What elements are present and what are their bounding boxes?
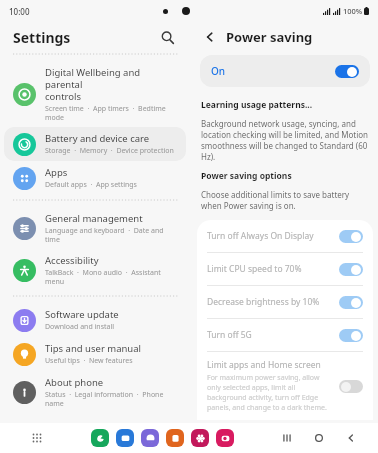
staticText: About phone [45, 376, 104, 389]
button[interactable]: Home [310, 429, 328, 447]
staticText: Settings [13, 28, 71, 47]
button[interactable]: Turn off Always On Display [197, 220, 373, 252]
staticText: Accessibility [45, 254, 99, 267]
button[interactable]: Back [200, 27, 220, 47]
button[interactable]: camera [216, 429, 234, 447]
button[interactable]: Recents [278, 429, 296, 447]
button[interactable]: gallery [191, 429, 209, 447]
button[interactable]: internet [141, 429, 159, 447]
staticText: Choose additional limits to save battery… [201, 189, 369, 211]
staticText: Software update [45, 308, 119, 321]
staticText: Turn off Always On Display [207, 230, 314, 242]
staticText: Limit apps and Home screen [207, 359, 321, 371]
button[interactable]: Back [342, 429, 360, 447]
button[interactable]: Limit apps and Home screen [197, 352, 373, 420]
staticText: Digital Wellbeing and parental controls [45, 66, 178, 103]
button[interactable]: Tips and user manual [4, 337, 186, 371]
staticText: Battery and device care [45, 132, 150, 145]
button[interactable]: phone [91, 429, 109, 447]
staticText: On [211, 64, 226, 78]
staticText: General management [45, 212, 143, 225]
button[interactable]: About phone [4, 371, 186, 413]
button[interactable]: General management [4, 207, 186, 249]
button[interactable]: Toggle [339, 230, 363, 243]
staticText: TalkBack · Mono audio · Assistant menu [45, 268, 178, 286]
staticText: Limit CPU speed to 70% [207, 263, 302, 275]
staticText: Status · Legal information · Phone name [45, 390, 178, 408]
button[interactable]: Apps [4, 161, 186, 195]
staticText: Apps [45, 166, 68, 179]
button[interactable]: Toggle [339, 296, 363, 309]
button[interactable]: All apps [27, 428, 47, 448]
button[interactable]: Accessibility [4, 249, 186, 291]
staticText: 10:00 [9, 6, 30, 17]
staticText: Power saving [226, 28, 313, 46]
staticText: Tips and user manual [45, 342, 142, 355]
button[interactable]: Toggle [339, 380, 363, 393]
button[interactable]: On [200, 55, 370, 87]
staticText: Turn off 5G [207, 329, 252, 341]
staticText: Power saving options [201, 170, 292, 182]
button[interactable]: Digital Wellbeing and parental controls [4, 61, 186, 127]
staticText: Screen time · App timers · Bedtime mode [45, 104, 178, 122]
button[interactable]: Toggle [339, 263, 363, 276]
button[interactable]: Toggle [339, 329, 363, 342]
staticText: Default apps · App settings [45, 180, 137, 190]
staticText: Storage · Memory · Device protection [45, 146, 174, 156]
staticText: Language and keyboard · Date and time [45, 226, 178, 244]
button[interactable]: Software update [4, 303, 186, 337]
button[interactable]: Limit CPU speed to 70% [197, 253, 373, 285]
button[interactable]: Decrease brightness by 10% [197, 286, 373, 318]
button[interactable]: Turn off 5G [197, 319, 373, 351]
button[interactable]: notes [166, 429, 184, 447]
button[interactable]: Toggle [335, 65, 359, 78]
staticText: Learning usage patterns... [201, 99, 313, 111]
staticText: Decrease brightness by 10% [207, 296, 320, 308]
staticText: For maximum power saving, allow only sel… [207, 373, 331, 413]
staticText: Background network usage, syncing, and l… [201, 118, 369, 162]
button[interactable]: Battery and device care [4, 127, 186, 161]
staticText: 100% [343, 6, 363, 16]
staticText: Useful tips · New features [45, 356, 133, 366]
button[interactable]: Search [156, 26, 178, 48]
button[interactable]: messages [116, 429, 134, 447]
staticText: Download and install [45, 322, 115, 332]
